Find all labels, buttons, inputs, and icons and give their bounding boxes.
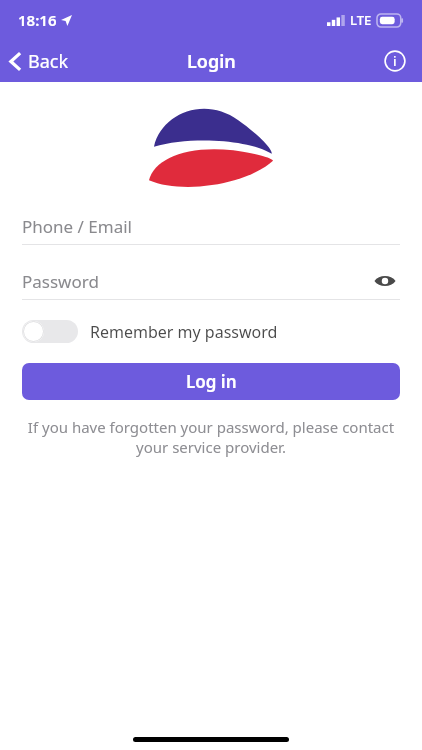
button[interactable]: Password [22,263,400,299]
button[interactable]: Log in [22,363,400,400]
button[interactable]: Show password [370,266,400,296]
staticText: If you have forgotten your password, ple… [26,417,396,457]
staticText: Back [28,49,69,74]
button[interactable]: Remember my password [22,320,278,343]
staticText: i [393,52,397,70]
button[interactable]: Phone / Email [22,208,400,244]
staticText: 18:16 [18,10,57,30]
staticText: Login [187,49,236,74]
staticText: LTE [350,11,372,29]
button[interactable]: Back [0,43,81,80]
staticText: Password [22,270,99,293]
staticText: Log in [186,370,237,393]
staticText: Phone / Email [22,215,132,238]
button[interactable]: Information [380,46,410,76]
staticText: Remember my password [90,321,278,343]
